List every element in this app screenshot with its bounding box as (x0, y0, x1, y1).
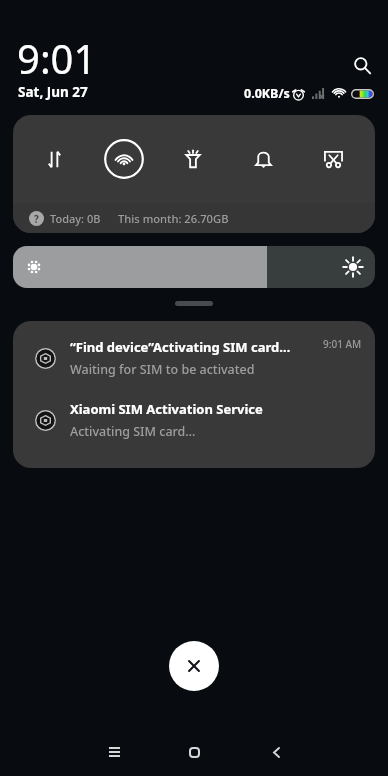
staticText: 0.0KB/s (244, 85, 290, 102)
button[interactable]: Mobile data (20, 115, 89, 203)
button[interactable]: “Find device”Activating SIM card… (13, 327, 375, 389)
staticText: “Find device”Activating SIM card… (70, 338, 291, 356)
button[interactable]: Ringer (228, 115, 298, 203)
staticText: Waiting for SIM to be activated (70, 361, 255, 378)
button[interactable]: Search (343, 47, 381, 85)
button[interactable]: Home (174, 732, 214, 772)
staticText: 9:01 AM (323, 337, 362, 351)
button[interactable]: Brightness (13, 246, 375, 288)
staticText: ? (34, 212, 39, 226)
button[interactable]: Clear all notifications (169, 641, 219, 691)
staticText: Activating SIM card… (70, 423, 196, 440)
button[interactable]: ? (13, 203, 375, 233)
button[interactable]: Recent apps (94, 732, 134, 772)
staticText: Sat, Jun 27 (18, 83, 88, 101)
staticText: Xiaomi SIM Activation Service (70, 400, 263, 418)
staticText: This month: 26.70GB (118, 211, 229, 226)
button[interactable]: Wi-Fi (89, 115, 158, 203)
button[interactable]: Back (256, 732, 296, 772)
button[interactable]: Flashlight (158, 115, 228, 203)
staticText: 9:01 (17, 31, 97, 85)
staticText: Today: 0B (50, 211, 101, 226)
button[interactable]: Screenshot (298, 115, 368, 203)
button[interactable]: Xiaomi SIM Activation Service (13, 389, 375, 451)
